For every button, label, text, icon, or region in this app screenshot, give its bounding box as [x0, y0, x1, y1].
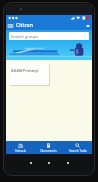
staticText: Search Tools [69, 149, 87, 153]
staticText: ####(Primary) [11, 68, 39, 73]
button[interactable]: ####(Primary) [9, 63, 49, 85]
staticText: Citizen [16, 22, 33, 29]
staticText: Documents [40, 149, 57, 153]
button[interactable]: Recents [64, 159, 72, 167]
button[interactable]: Search Tools [63, 141, 92, 154]
button[interactable]: Open navigation menu [6, 21, 15, 30]
button[interactable]: Search groups [9, 32, 89, 40]
button[interactable]: Home [45, 159, 53, 167]
button[interactable]: Documents [34, 141, 63, 154]
staticText: Schools [15, 149, 26, 153]
staticText: Search groups [11, 34, 38, 39]
button[interactable]: Schools [6, 141, 34, 154]
button[interactable]: More options [83, 21, 92, 30]
button[interactable]: Back [27, 159, 35, 167]
